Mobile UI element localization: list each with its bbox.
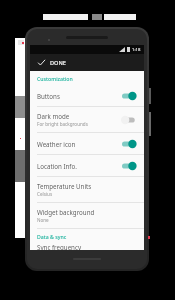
button[interactable] [122,115,137,125]
staticText: Location Info. [37,162,77,170]
staticText: Dark mode [37,112,70,120]
staticText: DONE [50,59,66,67]
button[interactable] [122,139,137,149]
button[interactable]: Buttons [30,85,144,107]
button[interactable]: Weather icon [30,133,144,155]
staticText: Widget background [37,208,95,216]
button[interactable]: Location Info. [30,155,144,177]
staticText: Weather icon [37,140,76,148]
other: Done [37,58,46,67]
staticText: Sync frequency [37,243,82,250]
staticText: Buttons [37,92,60,100]
button[interactable]: Temperature Units [30,177,144,203]
staticText: For bright backgrounds [37,121,88,127]
button[interactable] [122,161,137,171]
button[interactable]: Dark mode [30,107,144,133]
button[interactable]: Sync frequency [30,243,144,250]
button[interactable]: Done [36,56,67,69]
staticText: 1:18 [132,47,141,53]
button[interactable] [122,91,137,101]
staticText: Temperature Units [37,182,92,190]
button[interactable]: Widget background [30,203,144,229]
staticText: None [37,217,49,223]
staticText: Celsius [37,191,53,197]
staticText: Customization [37,75,73,82]
staticText: Data & sync [37,233,67,240]
